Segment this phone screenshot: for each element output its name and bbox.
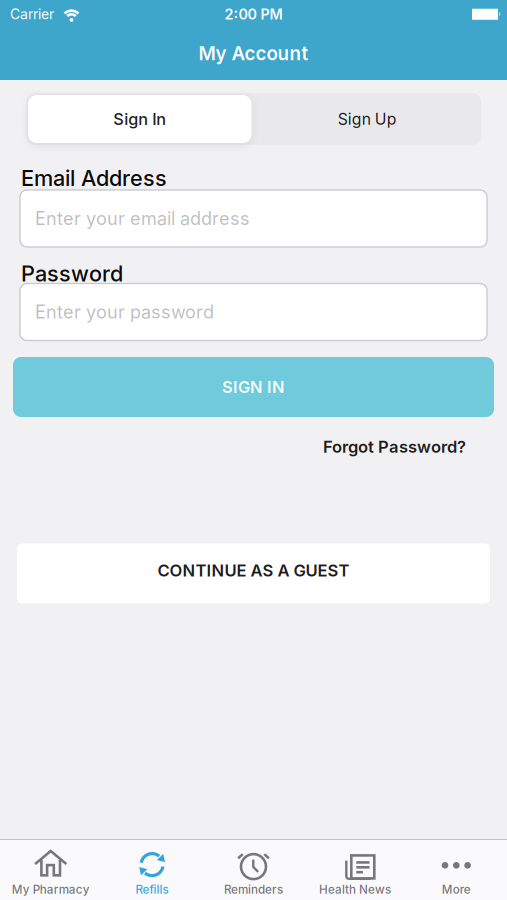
staticText: My Pharmacy xyxy=(12,883,90,896)
staticText: Forgot Password? xyxy=(323,437,466,456)
staticText: Enter your email address xyxy=(35,208,250,229)
staticText: SIGN IN xyxy=(222,377,285,397)
button[interactable]: Refills xyxy=(101,841,203,899)
button[interactable]: Reminders xyxy=(203,841,304,899)
staticText: My Account xyxy=(198,42,308,65)
button[interactable]: CONTINUE AS A GUEST xyxy=(17,543,490,603)
button[interactable]: Sign In xyxy=(28,95,251,143)
button[interactable]: Enter your password xyxy=(20,283,487,340)
staticText: Sign Up xyxy=(338,110,397,128)
staticText: Carrier xyxy=(10,6,54,22)
staticText: Enter your password xyxy=(35,301,214,323)
button[interactable]: Enter your email address xyxy=(20,190,487,247)
button[interactable]: Sign Up xyxy=(255,95,479,143)
staticText: More xyxy=(442,883,471,896)
button[interactable]: Forgot Password? xyxy=(323,437,466,456)
button[interactable]: Health News xyxy=(304,841,406,899)
button[interactable]: SIGN IN xyxy=(13,357,494,417)
staticText: Refills xyxy=(136,883,169,896)
staticText: Health News xyxy=(319,883,391,896)
staticText: Sign In xyxy=(113,109,166,129)
staticText: Email Address xyxy=(21,165,167,191)
staticText: CONTINUE AS A GUEST xyxy=(157,561,349,580)
button[interactable]: More xyxy=(406,841,507,899)
staticText: Password xyxy=(21,261,123,286)
staticText: Reminders xyxy=(224,883,283,896)
button[interactable]: My Pharmacy xyxy=(0,841,101,899)
staticText: 2:00 PM xyxy=(224,6,282,23)
